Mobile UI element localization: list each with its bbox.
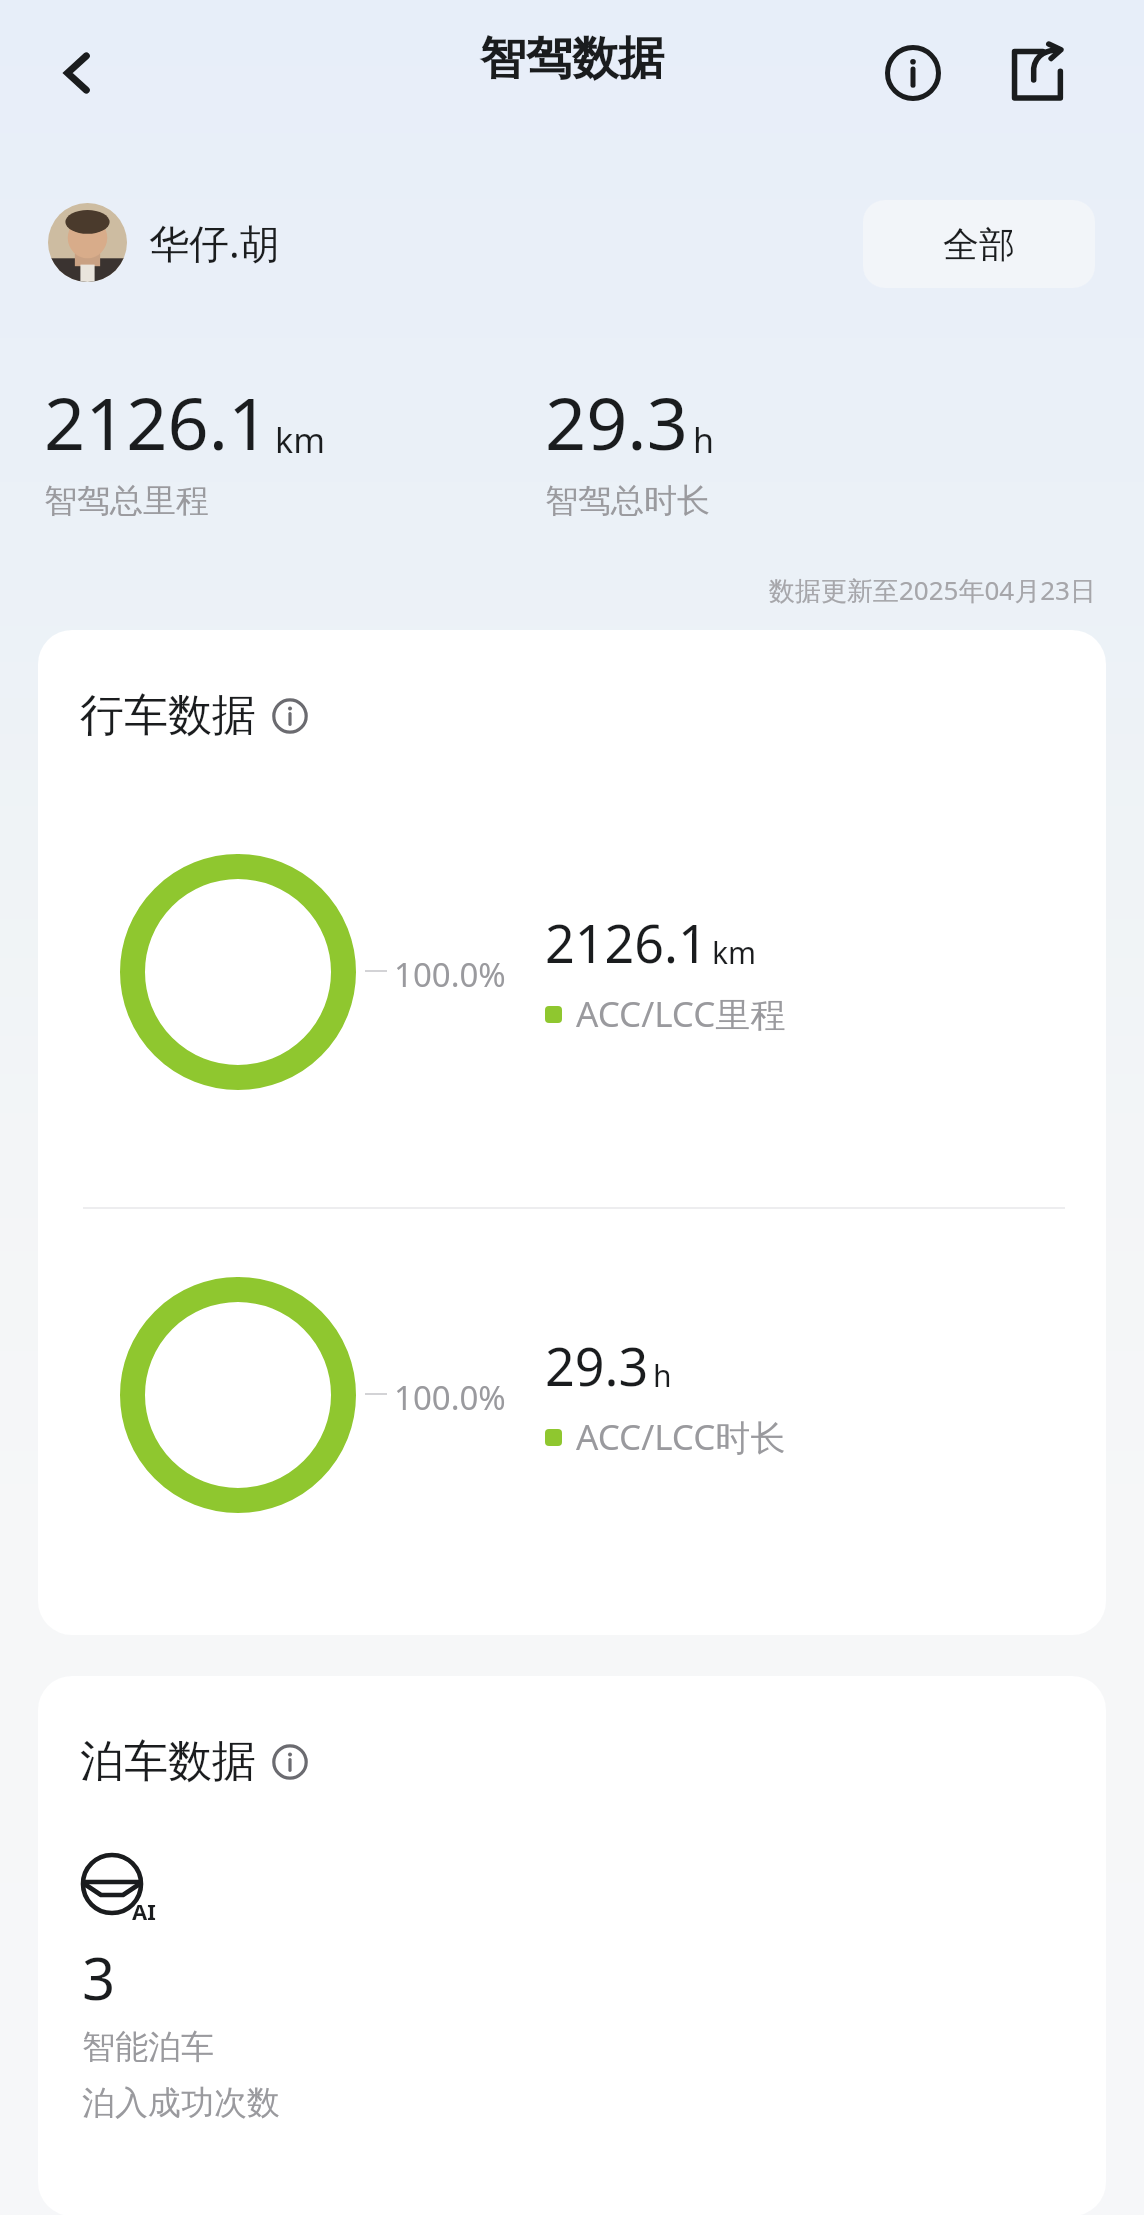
staticText: ACC/LCC时长 <box>576 1413 786 1461</box>
button[interactable]: Information <box>865 25 961 121</box>
button[interactable]: More information <box>272 1744 308 1780</box>
button[interactable]: 华仔.胡 <box>48 203 280 282</box>
staticText: 100.0% <box>394 1375 506 1420</box>
staticText: 2126.1 <box>545 907 708 978</box>
staticText: 100.0% <box>394 952 506 997</box>
staticText: 29.3 <box>545 373 688 471</box>
staticText: 泊车数据 <box>80 1734 256 1789</box>
staticText: 华仔.胡 <box>149 215 280 270</box>
button[interactable]: Share <box>988 25 1084 121</box>
staticText: 智能泊车 <box>82 2026 214 2068</box>
button[interactable]: 行车数据 <box>80 688 308 743</box>
staticText: 行车数据 <box>80 688 256 743</box>
button[interactable]: Back <box>30 25 126 121</box>
staticText: 智驾总里程 <box>44 480 209 522</box>
staticText: h <box>653 1355 672 1396</box>
staticText: AI <box>132 1896 156 1926</box>
staticText: h <box>693 417 715 463</box>
button[interactable]: More information <box>272 698 308 734</box>
staticText: 泊入成功次数 <box>82 2082 280 2124</box>
staticText: 数据更新至2025年04月23日 <box>769 572 1096 608</box>
staticText: 智驾总时长 <box>545 480 710 522</box>
staticText: 全部 <box>943 222 1015 267</box>
staticText: 29.3 <box>545 1330 649 1401</box>
staticText: km <box>275 417 325 463</box>
staticText: 2126.1 <box>44 373 270 471</box>
staticText: 3 <box>82 1938 116 2017</box>
staticText: 智驾数据 <box>480 30 664 88</box>
button[interactable]: 泊车数据 <box>80 1734 308 1789</box>
staticText: ACC/LCC里程 <box>576 990 786 1038</box>
staticText: km <box>712 932 757 973</box>
button[interactable]: 全部 <box>863 200 1095 288</box>
